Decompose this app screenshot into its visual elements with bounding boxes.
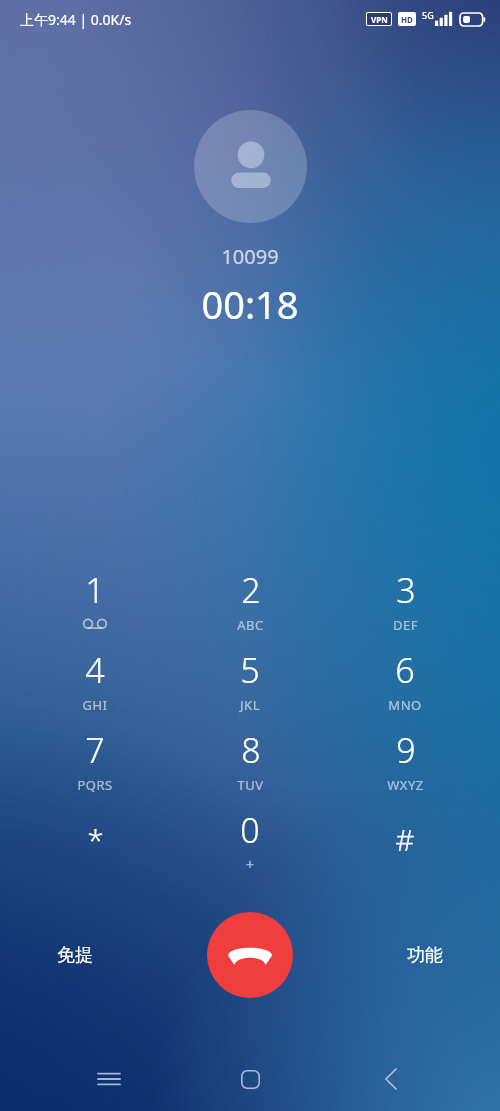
button[interactable]: 3 bbox=[345, 565, 465, 643]
staticText: 6 bbox=[395, 647, 415, 693]
button[interactable]: 7 bbox=[35, 725, 155, 803]
staticText: * bbox=[87, 819, 104, 860]
staticText: 9 bbox=[396, 727, 416, 773]
button[interactable]: End call bbox=[207, 912, 293, 998]
staticText: 3 bbox=[396, 567, 416, 613]
button[interactable]: # bbox=[345, 805, 465, 883]
staticText: JKL bbox=[240, 696, 260, 714]
button[interactable]: 0 bbox=[190, 805, 310, 883]
staticText: 8 bbox=[241, 727, 261, 773]
staticText: 7 bbox=[85, 727, 105, 773]
staticText: + bbox=[246, 855, 255, 874]
button[interactable]: 功能 bbox=[350, 925, 500, 985]
staticText: 上午9:44 | 0.0K/s bbox=[20, 10, 132, 29]
staticText: 0 bbox=[240, 807, 260, 853]
button[interactable]: * bbox=[35, 805, 155, 883]
button[interactable]: 免提 bbox=[0, 925, 150, 985]
button[interactable]: 8 bbox=[190, 725, 310, 803]
staticText: 功能 bbox=[407, 944, 443, 967]
staticText: 00:18 bbox=[201, 278, 299, 330]
staticText: 5G bbox=[422, 9, 434, 21]
button[interactable]: 2 bbox=[190, 565, 310, 643]
button[interactable]: 9 bbox=[345, 725, 465, 803]
staticText: 10099 bbox=[221, 243, 279, 270]
staticText: 免提 bbox=[57, 944, 93, 967]
staticText: 2 bbox=[241, 567, 261, 613]
button[interactable]: 6 bbox=[345, 645, 465, 723]
button[interactable]: 5 bbox=[190, 645, 310, 723]
button[interactable]: Back bbox=[359, 1047, 423, 1111]
staticText: 5 bbox=[240, 647, 260, 693]
staticText: WXYZ bbox=[387, 776, 424, 794]
staticText: PQRS bbox=[77, 776, 113, 794]
staticText: HD bbox=[401, 14, 413, 25]
staticText: 4 bbox=[85, 647, 105, 693]
staticText: VPN bbox=[371, 14, 388, 25]
button[interactable]: Home bbox=[218, 1047, 282, 1111]
button[interactable]: Recents bbox=[77, 1047, 141, 1111]
button[interactable]: 4 bbox=[35, 645, 155, 723]
staticText: TUV bbox=[237, 776, 264, 794]
staticText: # bbox=[395, 819, 415, 860]
staticText: GHI bbox=[82, 696, 108, 714]
staticText: MNO bbox=[388, 696, 422, 714]
staticText: ABC bbox=[237, 616, 264, 634]
staticText: DEF bbox=[393, 616, 418, 634]
staticText: 1 bbox=[85, 567, 105, 613]
button[interactable]: 1 bbox=[35, 565, 155, 643]
